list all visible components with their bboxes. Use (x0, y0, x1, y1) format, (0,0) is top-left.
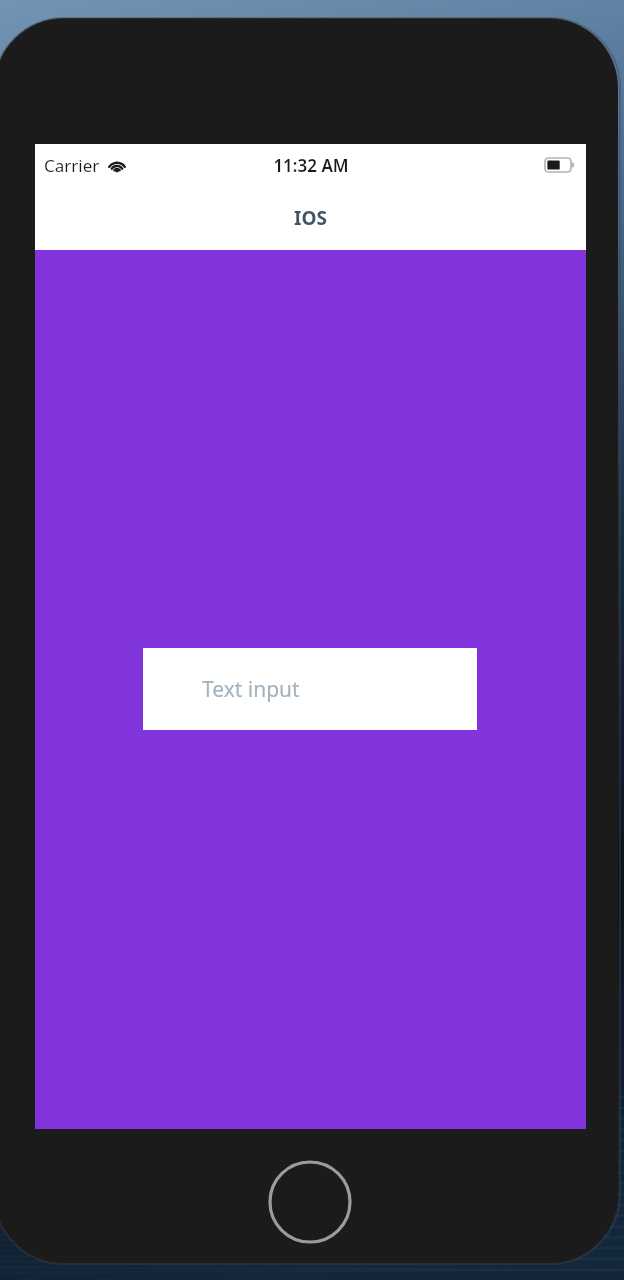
staticText: IOS (294, 205, 327, 231)
other: Wi-Fi signal (107, 158, 127, 173)
button[interactable]: Text input (143, 648, 477, 730)
staticText: 11:32 AM (273, 154, 349, 177)
staticText: Carrier (44, 154, 100, 177)
button[interactable]: Home (268, 1160, 352, 1244)
staticText: Text input (202, 675, 300, 704)
other: Battery (545, 158, 574, 172)
